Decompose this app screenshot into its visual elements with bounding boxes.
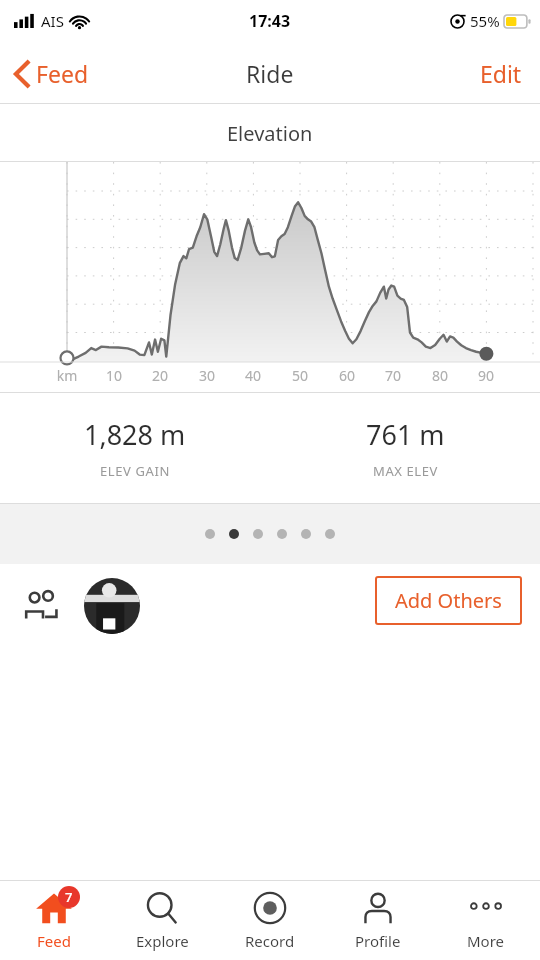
staticText: 60 xyxy=(330,366,364,385)
staticText: 10 xyxy=(97,366,131,385)
staticText: ELEV GAIN xyxy=(100,462,170,480)
staticText: More xyxy=(467,931,505,951)
button[interactable]: Profile xyxy=(324,880,432,960)
staticText: Feed xyxy=(36,58,89,89)
button[interactable]: Feed xyxy=(10,52,93,95)
button[interactable] xyxy=(205,529,215,539)
staticText: AIS xyxy=(41,11,64,31)
staticText: Profile xyxy=(355,931,401,951)
staticText: Edit xyxy=(480,58,522,89)
staticText: km xyxy=(50,366,84,385)
button[interactable] xyxy=(325,529,335,539)
button[interactable]: Add Others xyxy=(375,576,522,625)
staticText: Ride xyxy=(246,58,294,89)
staticText: 70 xyxy=(376,366,410,385)
button[interactable]: Record xyxy=(216,880,324,960)
staticText: Record xyxy=(245,931,295,951)
staticText: MAX ELEV xyxy=(373,462,438,480)
staticText: 30 xyxy=(190,366,224,385)
staticText: 17:43 xyxy=(249,10,291,32)
staticText: Explore xyxy=(136,931,189,951)
button[interactable] xyxy=(253,529,263,539)
staticText: Add Others xyxy=(395,587,502,614)
staticText: 20 xyxy=(143,366,177,385)
button[interactable]: Athletes xyxy=(22,585,64,627)
staticText: 1,828 m xyxy=(84,416,186,453)
button[interactable]: 1,828 m xyxy=(0,393,270,503)
staticText: 40 xyxy=(236,366,270,385)
button[interactable]: Edit xyxy=(476,52,526,95)
button[interactable]: More xyxy=(432,880,540,960)
staticText: 55% xyxy=(470,11,500,31)
button[interactable]: Explore xyxy=(108,880,216,960)
button[interactable]: 761 m xyxy=(270,393,540,503)
staticText: 80 xyxy=(423,366,457,385)
staticText: 90 xyxy=(469,366,503,385)
button[interactable] xyxy=(301,529,311,539)
button[interactable]: 7 xyxy=(0,880,108,960)
button[interactable] xyxy=(277,529,287,539)
staticText: 761 m xyxy=(366,416,445,453)
button[interactable] xyxy=(229,529,239,539)
button[interactable]: Athlete avatar xyxy=(84,578,140,634)
staticText: 7 xyxy=(65,888,73,906)
staticText: Feed xyxy=(37,931,71,951)
staticText: 50 xyxy=(283,366,317,385)
staticText: Elevation xyxy=(227,120,313,147)
